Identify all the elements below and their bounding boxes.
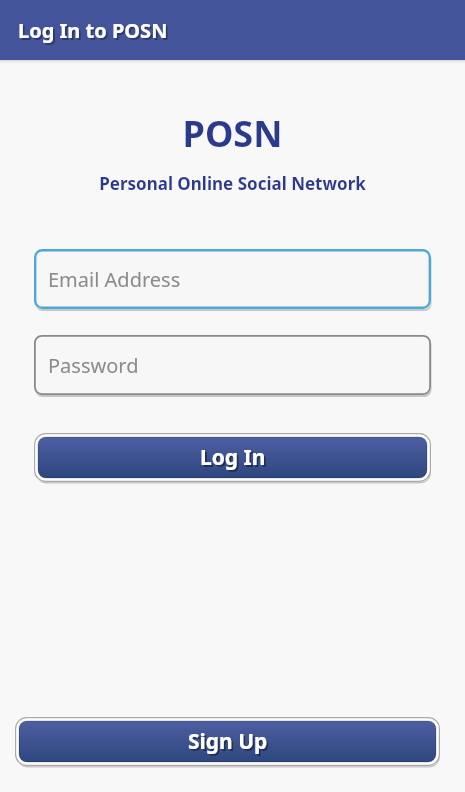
staticText: Email Address: [48, 266, 181, 293]
staticText: POSN: [0, 109, 465, 158]
staticText: Password: [48, 352, 139, 379]
staticText: Log In to POSN: [20, 19, 170, 46]
button[interactable]: Password: [34, 335, 431, 395]
staticText: Log In to POSN: [18, 17, 168, 44]
button[interactable]: Sign Up: [15, 717, 440, 766]
staticText: Log In: [202, 445, 268, 474]
staticText: Log In: [200, 443, 266, 472]
button[interactable]: Email Address: [34, 249, 431, 309]
button[interactable]: Log In: [34, 433, 431, 482]
staticText: Personal Online Social Network: [0, 172, 465, 195]
staticText: Sign Up: [190, 729, 270, 758]
staticText: Sign Up: [188, 727, 268, 756]
